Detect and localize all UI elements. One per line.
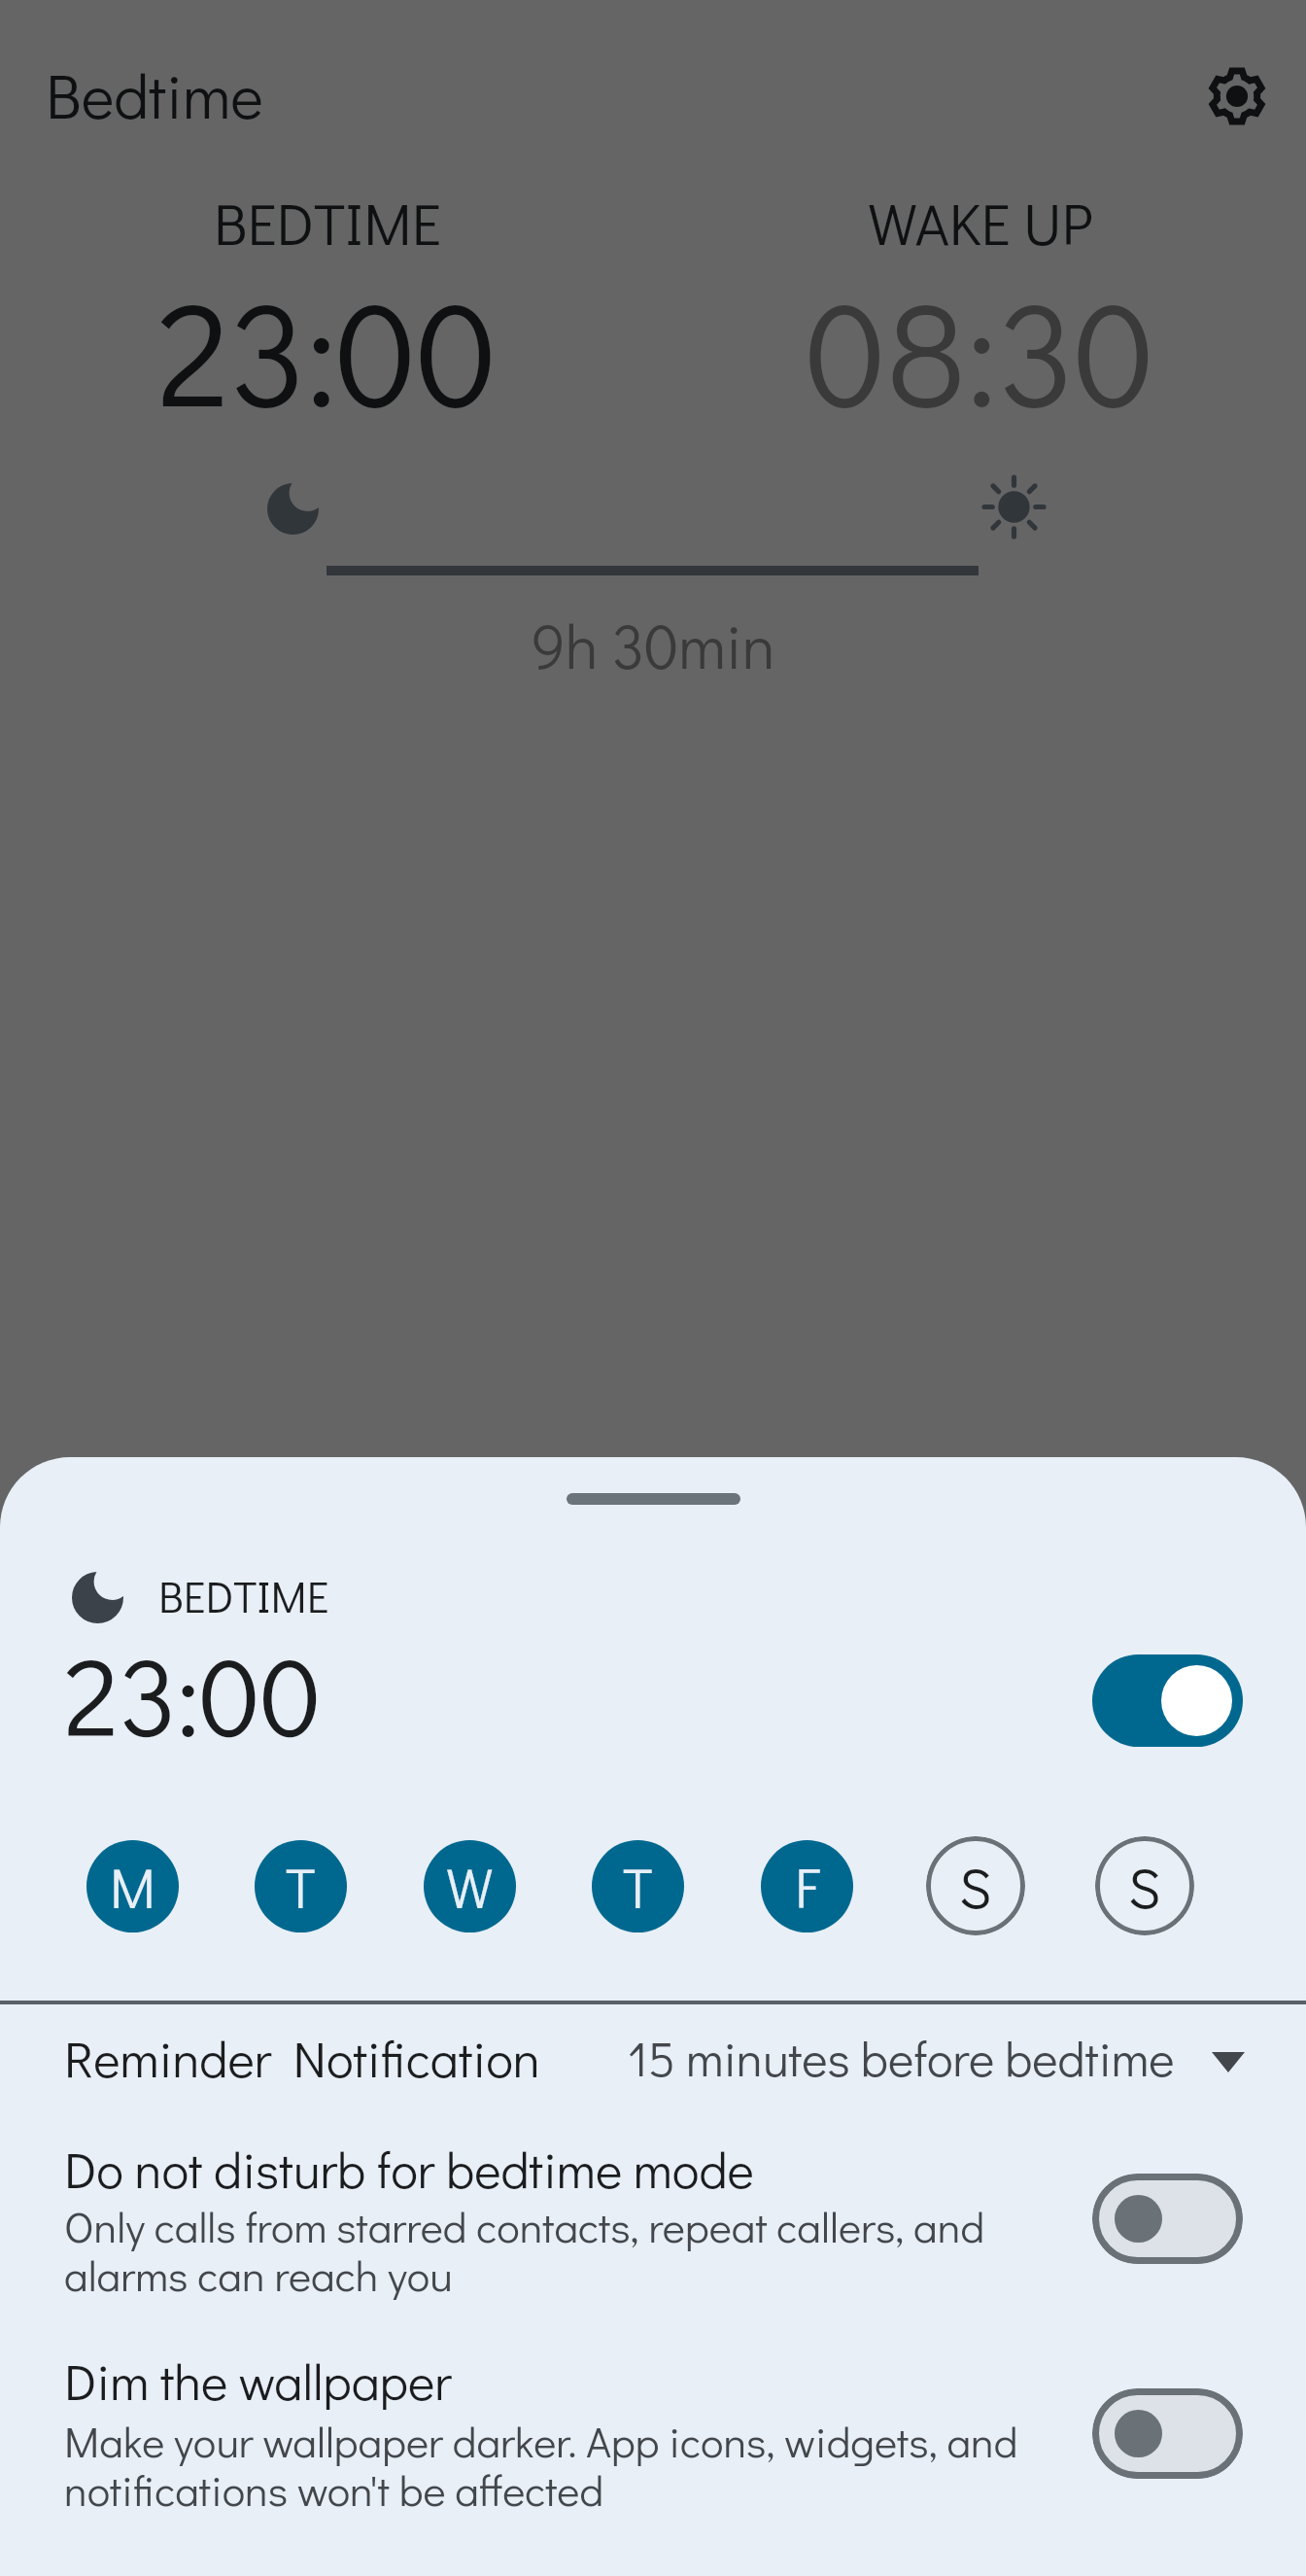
staticText: T	[623, 1850, 653, 1923]
button[interactable]: F	[761, 1840, 853, 1932]
button[interactable]: 23:00	[64, 1622, 322, 1765]
button[interactable]: WAKE UP	[762, 184, 1199, 449]
button[interactable]: S	[926, 1836, 1025, 1935]
button[interactable]: W	[424, 1840, 516, 1932]
staticText: Reminder Notification	[64, 2025, 540, 2091]
button[interactable]: Bedtime alarm enabled	[1092, 1654, 1243, 1747]
staticText: WAKE UP	[868, 184, 1093, 261]
staticText: BEDTIME	[214, 184, 441, 261]
button[interactable]: S	[1095, 1836, 1194, 1935]
button[interactable]: T	[592, 1840, 684, 1932]
button[interactable]	[0, 2004, 1306, 2102]
button[interactable]: T	[255, 1840, 347, 1932]
staticText: 23:00	[157, 256, 498, 444]
staticText: S	[959, 1850, 992, 1923]
staticText: Make your wallpaper darker. App icons, w…	[64, 2413, 1018, 2518]
staticText: 08:30	[806, 256, 1155, 444]
staticText: T	[286, 1850, 316, 1923]
staticText: Dim the wallpaper	[64, 2348, 452, 2414]
staticText: S	[1128, 1850, 1161, 1923]
staticText: Only calls from starred contacts, repeat…	[64, 2198, 985, 2303]
staticText: 15 minutes before bedtime	[628, 2026, 1175, 2090]
staticText: BEDTIME	[158, 1567, 329, 1624]
staticText: Bedtime	[46, 53, 263, 135]
staticText: 9h 30min	[0, 605, 1306, 685]
staticText: Do not disturb for bedtime mode	[64, 2136, 754, 2202]
button[interactable]: Settings	[1183, 42, 1291, 151]
button[interactable]: M	[86, 1840, 179, 1932]
button[interactable]: Toggle off	[1092, 2388, 1243, 2479]
button[interactable]: BEDTIME	[109, 184, 546, 449]
staticText: W	[446, 1850, 494, 1923]
staticText: M	[110, 1850, 156, 1923]
staticText: F	[795, 1850, 820, 1923]
button[interactable]: Toggle off	[1092, 2174, 1243, 2264]
